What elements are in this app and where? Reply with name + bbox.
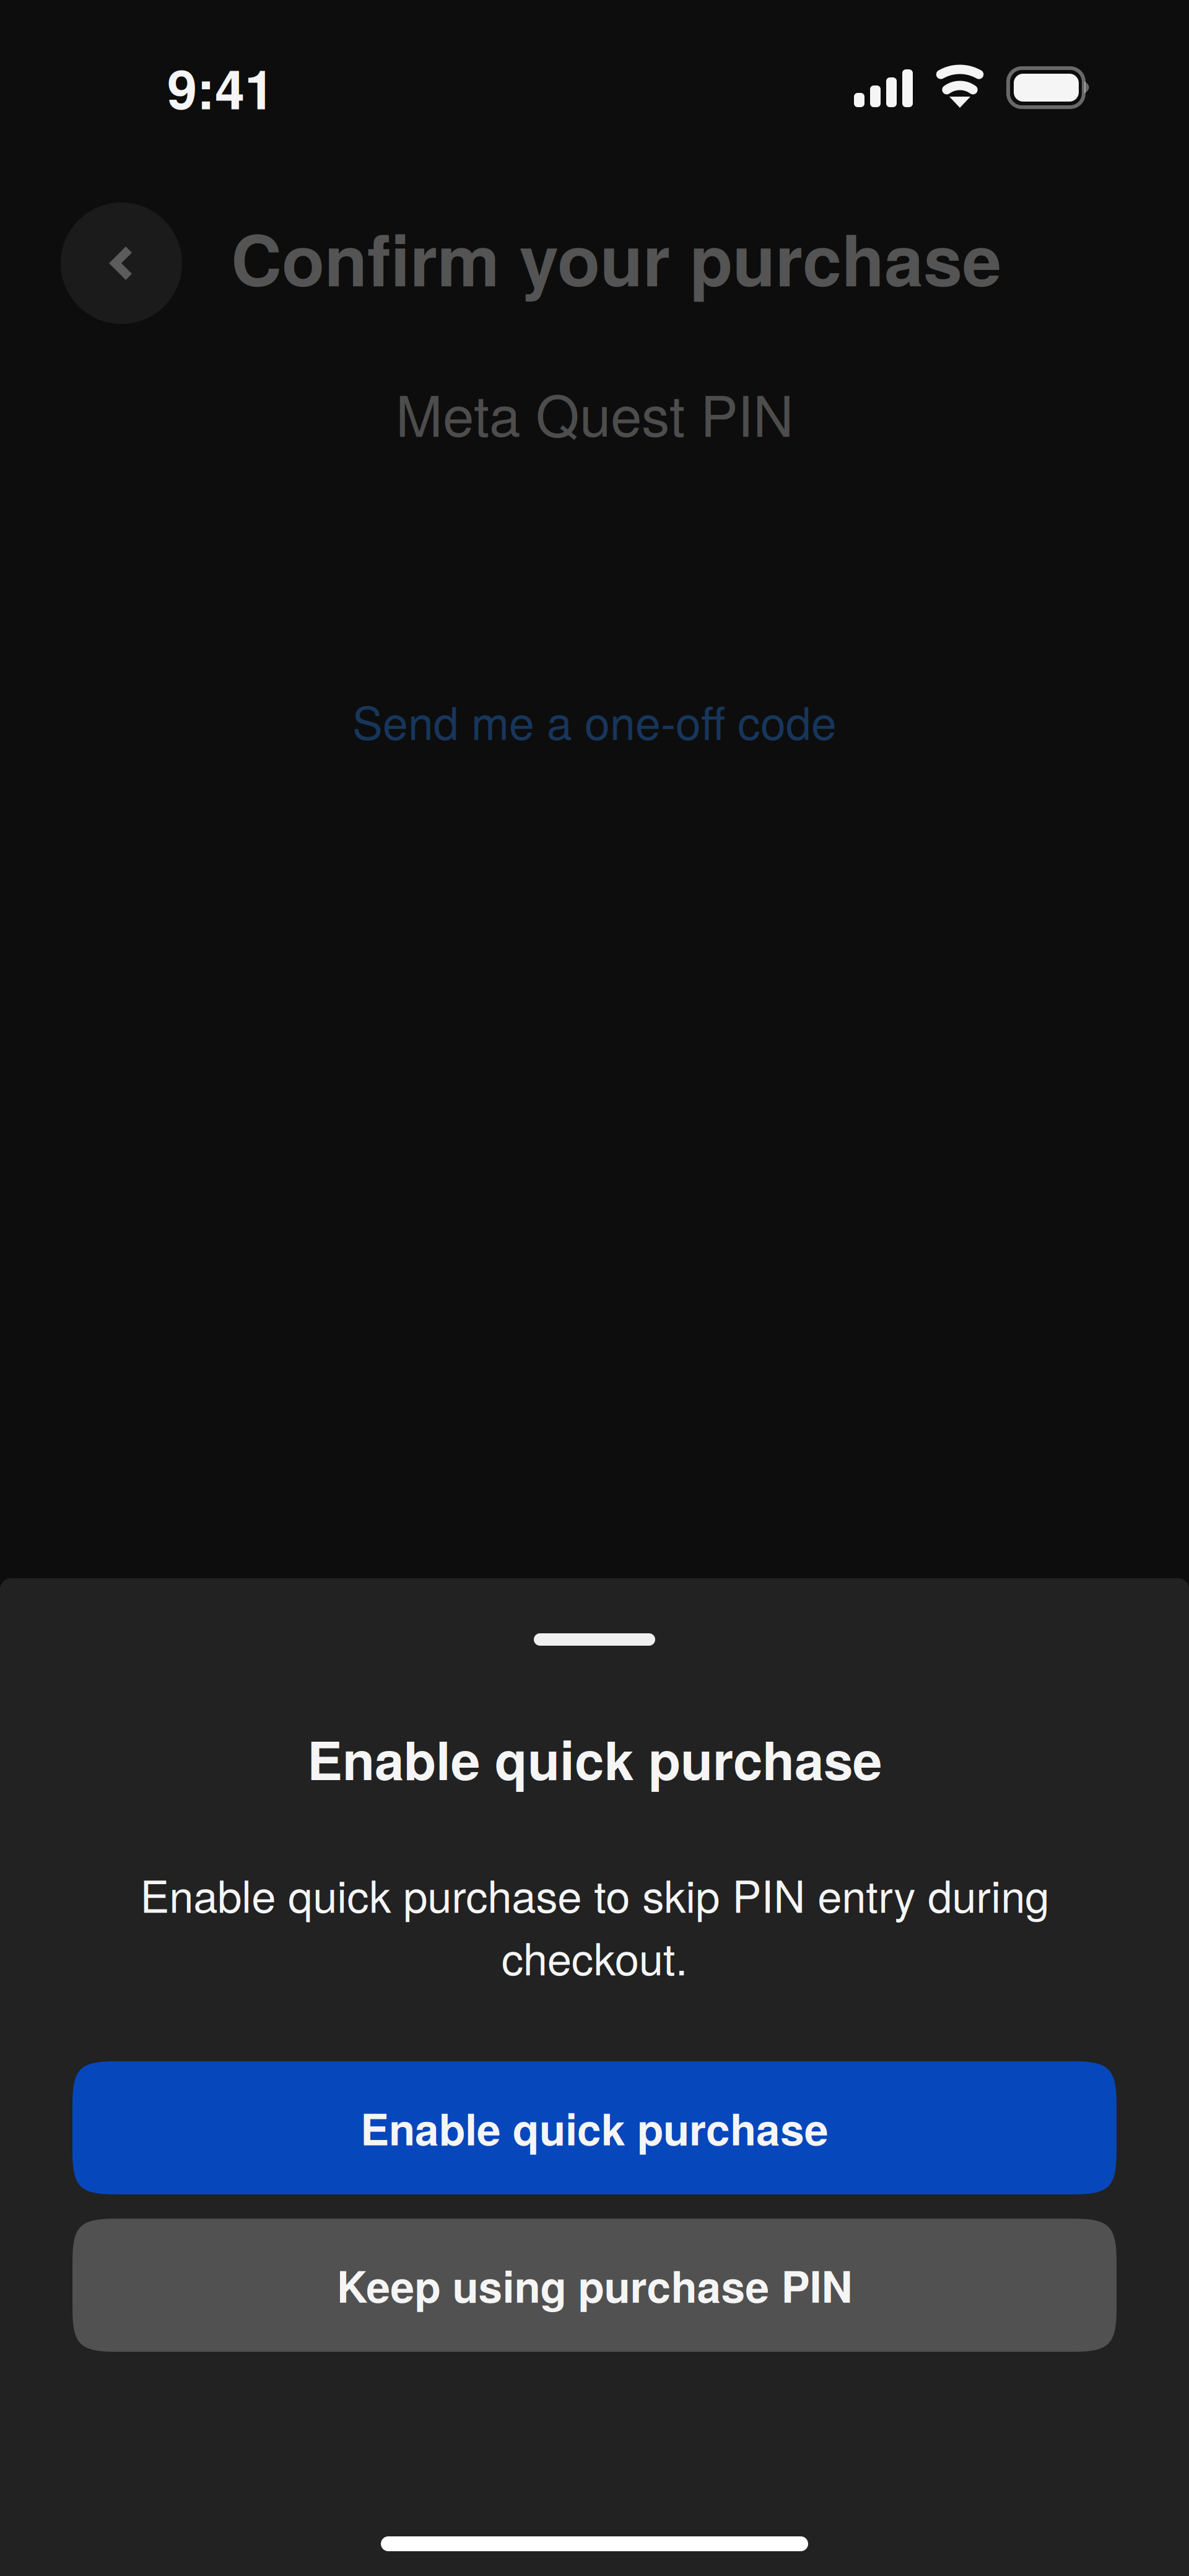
button[interactable]: Back xyxy=(61,203,182,324)
staticText: Enable quick purchase xyxy=(307,1721,882,1796)
button[interactable]: Keep using purchase PIN xyxy=(72,2219,1117,2352)
staticText: Confirm your purchase xyxy=(231,207,1001,308)
staticText: Keep using purchase PIN xyxy=(337,2254,852,2316)
button[interactable]: Enable quick purchase xyxy=(72,2061,1117,2194)
staticText: Enable quick purchase to skip PIN entry … xyxy=(140,1862,1049,1988)
staticText: Enable quick purchase xyxy=(360,2097,829,2159)
button[interactable]: Send me a one-off code xyxy=(328,674,861,767)
staticText: 9:41 xyxy=(167,49,274,126)
staticText: Meta Quest PIN xyxy=(396,372,793,453)
staticText: Send me a one-off code xyxy=(352,688,837,753)
